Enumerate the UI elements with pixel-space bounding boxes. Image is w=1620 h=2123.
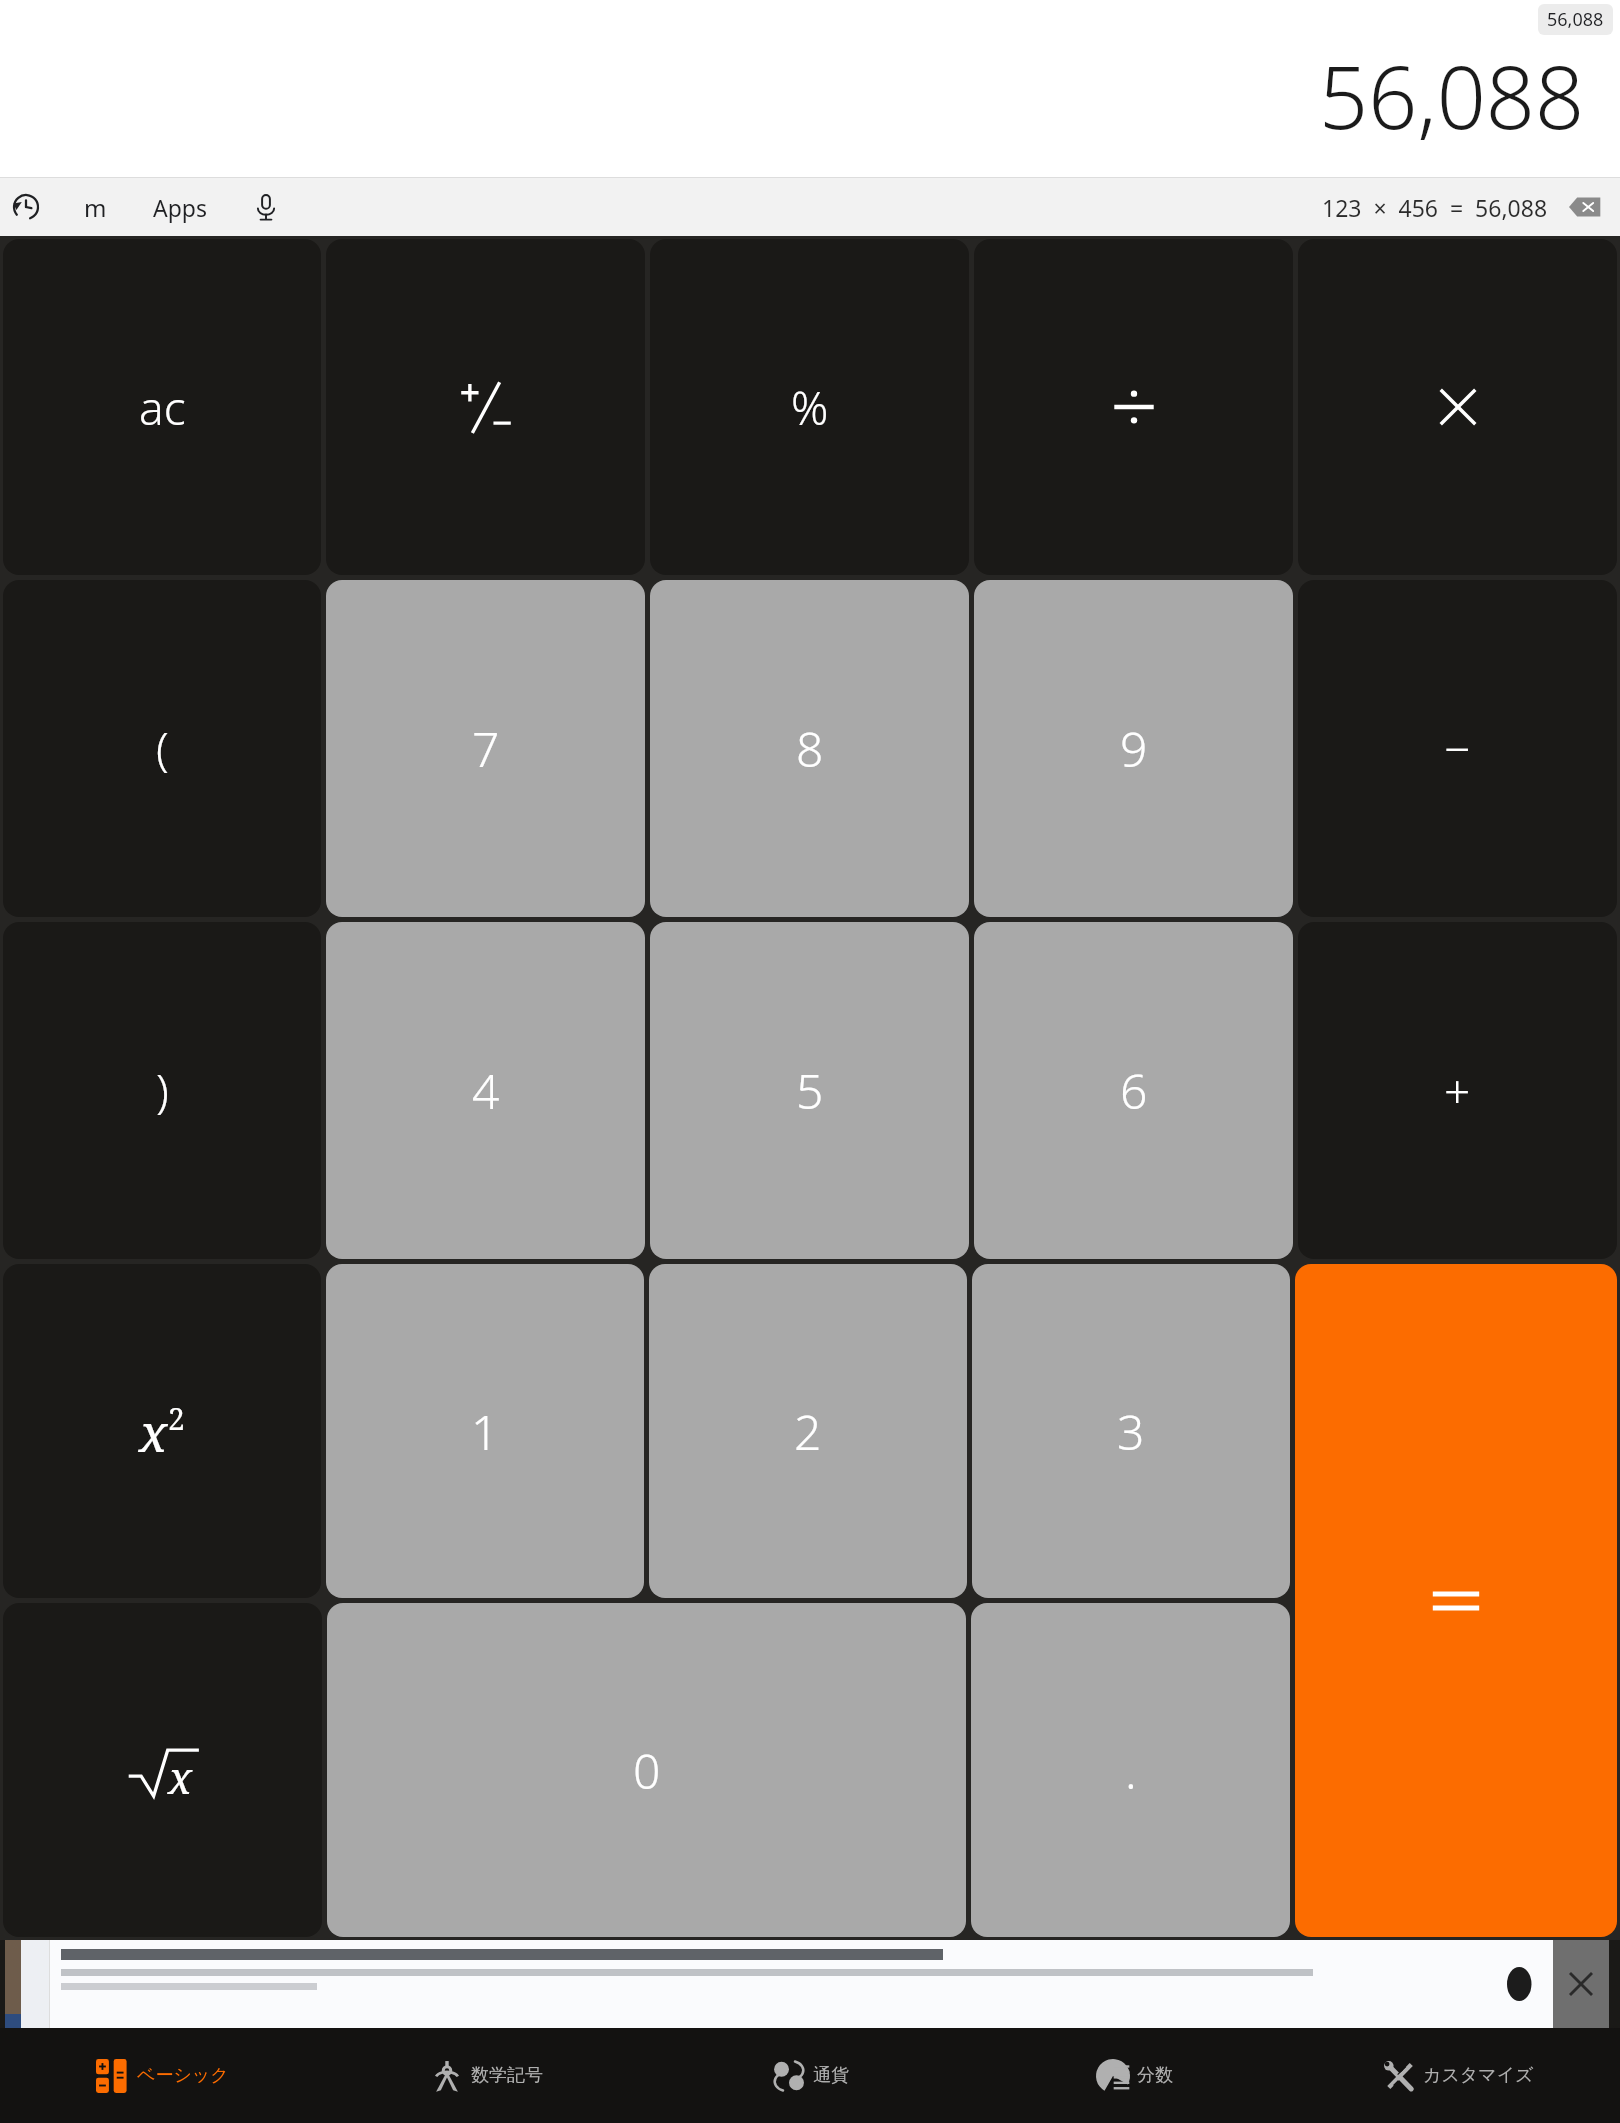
button[interactable]: 通貨 [648, 2028, 972, 2123]
staticText: x [139, 1396, 168, 1467]
button[interactable]: 7 [326, 580, 645, 917]
button[interactable]: History [0, 181, 52, 233]
staticText: 2 [168, 1398, 185, 1439]
staticText: 3 [1117, 1399, 1145, 1464]
button[interactable]: ( [3, 580, 321, 917]
staticText: 1 [471, 1399, 499, 1464]
button[interactable]: Equals [1295, 1264, 1617, 1937]
staticText: − [1444, 717, 1471, 780]
button[interactable]: ) [3, 922, 321, 1259]
staticText: 9 [1120, 716, 1148, 781]
button[interactable]: Divide [974, 239, 1293, 575]
staticText: . [1125, 1738, 1137, 1803]
staticText: 分数 [1137, 2064, 1173, 2087]
button[interactable]: Plus minus [326, 239, 645, 575]
button[interactable]: 8 [650, 580, 969, 917]
button[interactable]: + [1298, 922, 1617, 1259]
button[interactable]: 4 [326, 922, 645, 1259]
staticText: ac [139, 376, 186, 439]
button[interactable]: Apps [143, 184, 218, 231]
staticText: 通貨 [813, 2064, 849, 2087]
button[interactable]: Multiply [1298, 239, 1617, 575]
button[interactable]: 6 [974, 922, 1293, 1259]
button[interactable]: m [74, 183, 117, 232]
staticText: + [1444, 1059, 1471, 1122]
staticText: x [168, 1747, 193, 1807]
staticText: 数学記号 [471, 2064, 543, 2087]
button[interactable]: − [1298, 580, 1617, 917]
button[interactable]: カスタマイズ [1296, 2028, 1620, 2123]
staticText: m [84, 191, 107, 224]
button[interactable]: ベーシック [0, 2028, 324, 2123]
button[interactable]: 0 [327, 1603, 966, 1937]
staticText: % [791, 376, 829, 439]
button[interactable] [50, 1940, 1495, 2028]
button[interactable]: Square root [3, 1603, 322, 1937]
staticText: 2 [794, 1399, 822, 1464]
button[interactable]: Voice input [242, 183, 290, 231]
button[interactable]: . [971, 1603, 1290, 1937]
button[interactable]: 2 [649, 1264, 967, 1598]
button[interactable]: x squared [3, 1264, 321, 1598]
button[interactable]: 1 [326, 1264, 644, 1598]
staticText: 5 [796, 1058, 824, 1123]
button[interactable]: 123 × 456 = 56,088 [1322, 192, 1548, 223]
button[interactable]: 9 [974, 580, 1293, 917]
staticText: 4 [472, 1058, 500, 1123]
button[interactable]: 3 [972, 1264, 1290, 1598]
staticText: Apps [153, 192, 208, 223]
staticText: 8 [796, 716, 824, 781]
staticText: ) [156, 1059, 169, 1122]
staticText: ( [156, 717, 169, 780]
button[interactable]: % [650, 239, 969, 575]
staticText: 0 [633, 1738, 661, 1803]
staticText: 6 [1120, 1058, 1148, 1123]
button[interactable]: ac [3, 239, 321, 575]
button[interactable]: 分数 [972, 2028, 1296, 2123]
button[interactable]: Close ad [1553, 1940, 1609, 2028]
staticText: 56,088 [1547, 7, 1604, 32]
staticText: ベーシック [137, 2064, 229, 2087]
button[interactable]: 数学記号 [324, 2028, 648, 2123]
staticText: 7 [472, 716, 500, 781]
button[interactable]: Backspace [1562, 184, 1608, 230]
staticText: カスタマイズ [1423, 2064, 1534, 2087]
button[interactable]: 56,088 [1538, 4, 1613, 35]
button[interactable]: 5 [650, 922, 969, 1259]
staticText: 56,088 [1319, 37, 1584, 154]
